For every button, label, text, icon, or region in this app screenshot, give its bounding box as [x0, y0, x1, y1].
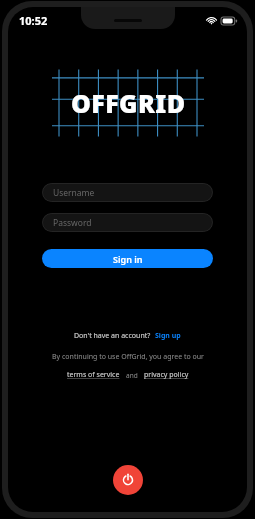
- button[interactable]: terms of service: [67, 370, 120, 380]
- staticText: Sign up: [155, 331, 181, 341]
- staticText: Username: [53, 187, 95, 199]
- button[interactable]: Sign in: [42, 249, 213, 268]
- button[interactable]: Password: [42, 213, 213, 232]
- staticText: Password: [53, 217, 92, 229]
- staticText: Sign in: [113, 253, 143, 265]
- button[interactable]: Power: [113, 465, 143, 495]
- button[interactable]: Username: [42, 183, 213, 202]
- button[interactable]: privacy policy: [144, 370, 189, 380]
- button[interactable]: Sign up: [155, 331, 181, 341]
- staticText: OFFGRID: [71, 86, 186, 120]
- staticText: 10:52: [19, 13, 48, 28]
- staticText: and: [126, 371, 138, 380]
- staticText: privacy policy: [144, 370, 189, 380]
- staticText: By continuing to use OffGrid, you agree …: [52, 352, 204, 362]
- staticText: terms of service: [67, 370, 120, 380]
- staticText: Don't have an account?: [74, 331, 151, 341]
